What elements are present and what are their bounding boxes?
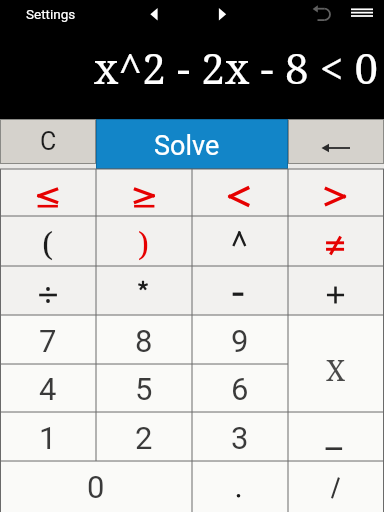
button[interactable] [288, 169, 384, 216]
button[interactable]: ) [96, 216, 192, 266]
button[interactable] [192, 266, 288, 315]
staticText: ( [42, 222, 54, 266]
button[interactable] [192, 169, 288, 216]
button[interactable] [140, 0, 168, 30]
staticText: 0 [87, 469, 105, 505]
staticText: 6 [231, 371, 249, 407]
button[interactable]: X [288, 315, 384, 412]
staticText: X [326, 350, 346, 389]
button[interactable]: 1 [0, 412, 96, 461]
staticText: 2 [135, 420, 153, 456]
staticText: 7 [39, 323, 57, 359]
staticText: ) [138, 222, 150, 266]
button[interactable] [96, 169, 192, 216]
button[interactable]: 6 [192, 364, 288, 412]
staticText: 3 [231, 420, 249, 456]
button[interactable]: 8 [96, 315, 192, 364]
button[interactable]: Settings [16, 0, 86, 29]
button[interactable] [345, 0, 379, 30]
button[interactable] [288, 412, 384, 461]
button[interactable] [288, 119, 384, 164]
button[interactable]: Solve [96, 119, 288, 169]
button[interactable]: C [0, 119, 96, 164]
button[interactable] [306, 0, 336, 30]
button[interactable]: 9 [192, 315, 288, 364]
button[interactable] [288, 461, 384, 512]
staticText: 1 [39, 420, 57, 456]
button[interactable]: 7 [0, 315, 96, 364]
button[interactable] [288, 216, 384, 266]
staticText: 5 [135, 371, 153, 407]
button[interactable]: 3 [192, 412, 288, 461]
button[interactable] [96, 266, 192, 315]
button[interactable] [0, 266, 96, 315]
staticText: C [40, 127, 57, 156]
button[interactable]: 2 [96, 412, 192, 461]
button[interactable] [206, 0, 234, 30]
button[interactable]: ( [0, 216, 96, 266]
staticText: 8 [135, 323, 153, 359]
button[interactable]: 5 [96, 364, 192, 412]
staticText: Solve [154, 130, 220, 162]
staticText: Settings [26, 6, 76, 22]
staticText: 9 [231, 323, 249, 359]
staticText: x^2 - 2x - 8 < 0 [94, 39, 379, 96]
staticText: 4 [39, 371, 57, 407]
button[interactable]: 0 [0, 461, 192, 512]
button[interactable]: 4 [0, 364, 96, 412]
button[interactable] [0, 169, 96, 216]
button[interactable] [192, 461, 288, 512]
button[interactable] [192, 216, 288, 266]
button[interactable] [288, 266, 384, 315]
